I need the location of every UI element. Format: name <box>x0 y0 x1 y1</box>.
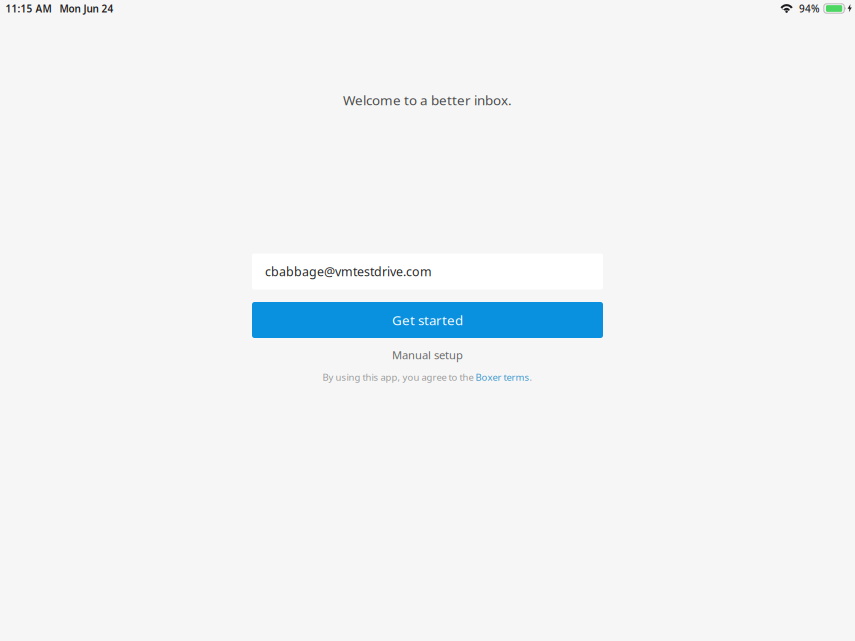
button[interactable]: cbabbage@vmtestdrive.com <box>252 253 603 289</box>
staticText: Welcome to a better inbox. <box>343 91 512 109</box>
staticText: cbabbage@vmtestdrive.com <box>265 263 432 280</box>
button[interactable]: Manual setup <box>252 345 603 365</box>
button[interactable]: Get started <box>252 302 603 338</box>
staticText: By using this app, you agree to the <box>322 371 475 383</box>
staticText: Get started <box>392 311 463 329</box>
staticText: 94% <box>799 2 820 15</box>
staticText: . <box>529 371 532 383</box>
staticText: Boxer terms <box>475 371 529 383</box>
button[interactable]: Boxer terms <box>475 371 529 383</box>
staticText: Mon Jun 24 <box>59 2 113 15</box>
staticText: 11:15 AM <box>5 2 51 15</box>
staticText: Manual setup <box>392 347 463 363</box>
